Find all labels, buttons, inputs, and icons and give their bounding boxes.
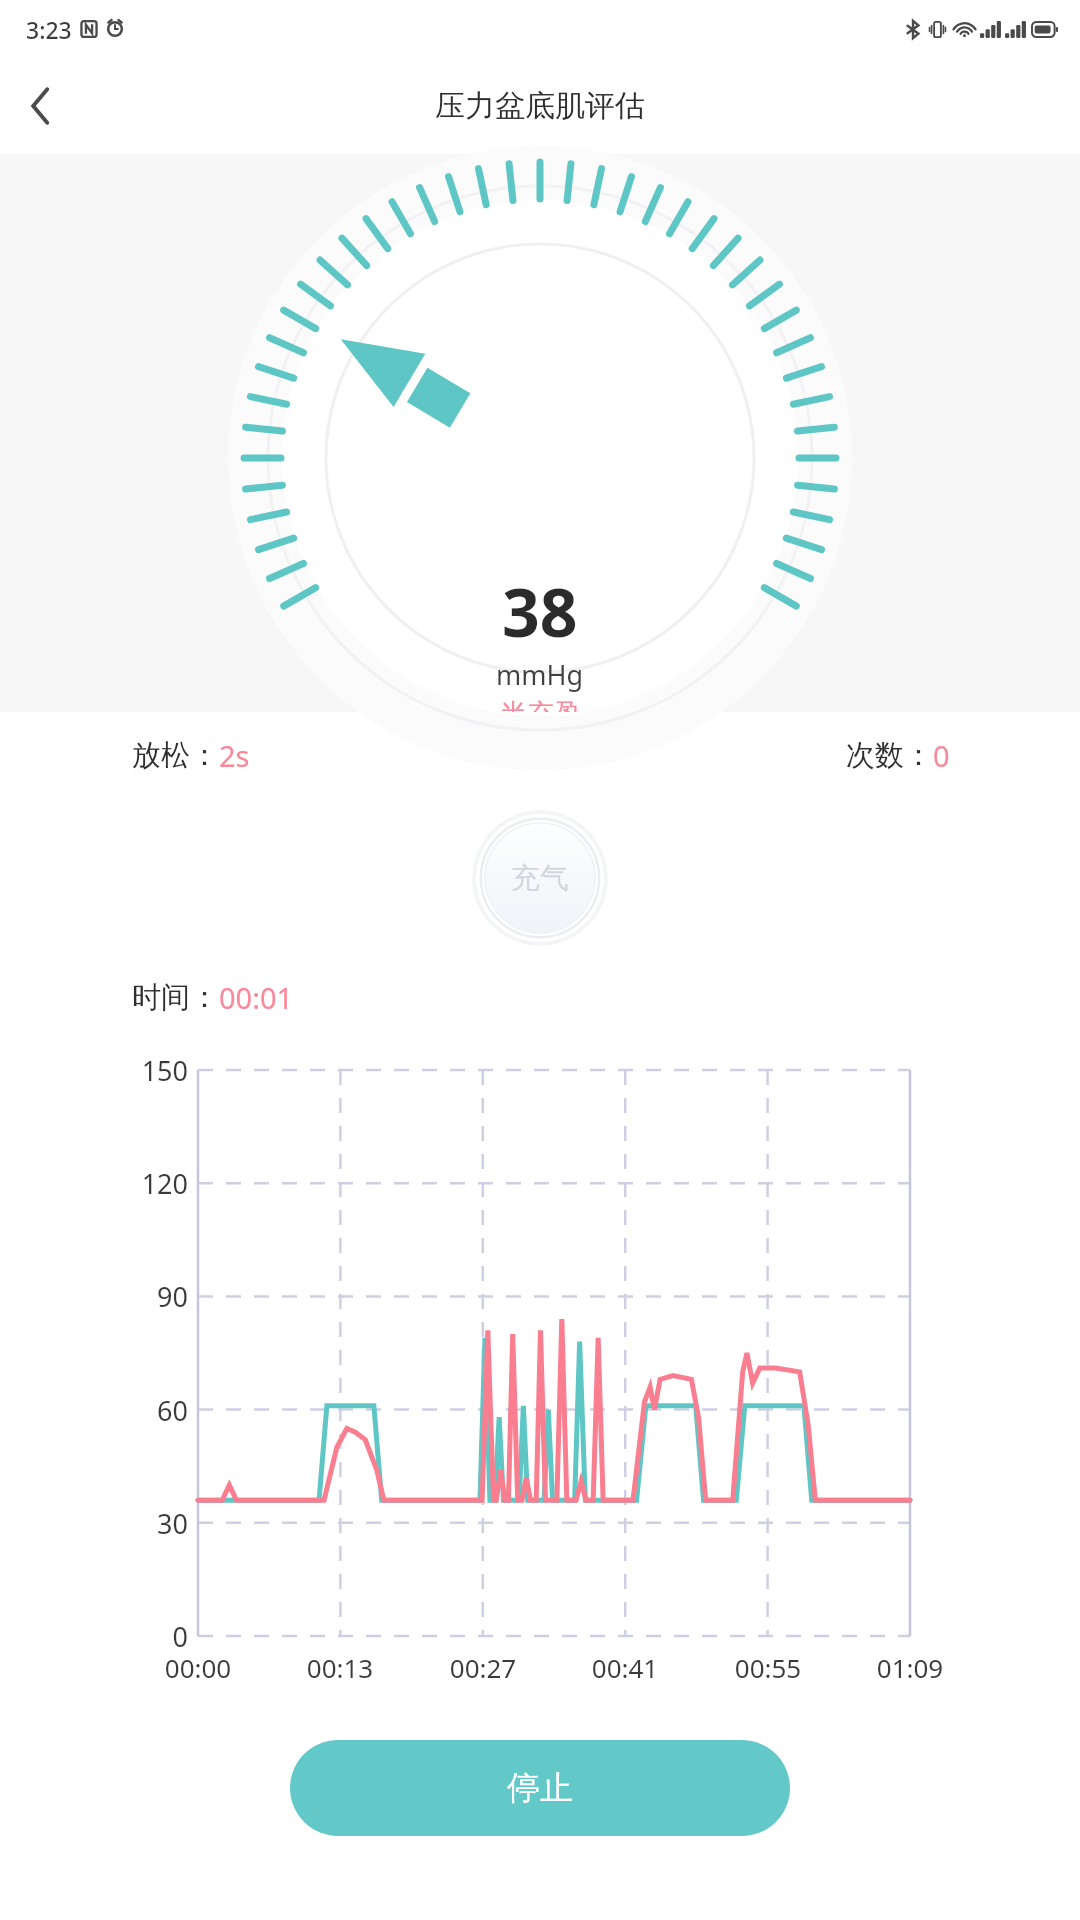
button[interactable]: Back bbox=[8, 73, 74, 139]
button[interactable]: 充气 bbox=[472, 810, 608, 946]
staticText: 充气 bbox=[511, 860, 569, 897]
staticText: 半充盈 bbox=[500, 697, 581, 712]
staticText: 60 bbox=[118, 1392, 188, 1429]
staticText: 00:41 bbox=[555, 1650, 695, 1685]
staticText: 次数： bbox=[846, 737, 933, 774]
staticText: 2s bbox=[219, 736, 250, 775]
staticText: 压力盆底肌评估 bbox=[435, 87, 645, 125]
staticText: 00:01 bbox=[219, 978, 294, 1017]
staticText: 90 bbox=[118, 1278, 188, 1315]
staticText: 30 bbox=[118, 1505, 188, 1542]
staticText: 放松： bbox=[132, 737, 219, 774]
staticText: 停止 bbox=[507, 1767, 573, 1809]
staticText: 00:00 bbox=[128, 1650, 268, 1685]
staticText: 时间： bbox=[132, 979, 219, 1016]
staticText: 00:13 bbox=[270, 1650, 410, 1685]
staticText: 01:09 bbox=[840, 1650, 980, 1685]
staticText: 120 bbox=[118, 1165, 188, 1202]
staticText: 150 bbox=[118, 1052, 188, 1089]
staticText: 0 bbox=[933, 736, 950, 775]
staticText: 00:55 bbox=[698, 1650, 838, 1685]
staticText: 0 bbox=[118, 1618, 188, 1655]
staticText: 00:27 bbox=[413, 1650, 553, 1685]
button[interactable]: 停止 bbox=[290, 1740, 790, 1836]
staticText: 38 bbox=[502, 566, 578, 656]
staticText: 3:23 bbox=[26, 14, 72, 45]
staticText: mmHg bbox=[496, 656, 584, 693]
